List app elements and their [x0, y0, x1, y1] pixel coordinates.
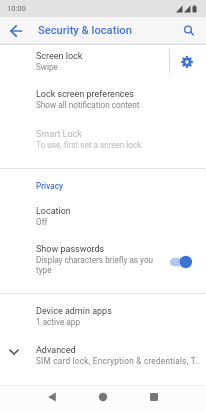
button[interactable]: Screen lock [0, 45, 206, 83]
button[interactable]: Smart Lock [0, 121, 206, 160]
staticText: 1 active app [36, 317, 80, 327]
button[interactable]: Location [0, 200, 206, 238]
staticText: Display characters briefly as you [36, 255, 154, 265]
button[interactable] [170, 255, 192, 269]
button[interactable] [144, 387, 164, 407]
staticText: Swipe [36, 62, 58, 72]
staticText: Off [36, 217, 48, 227]
button[interactable]: Lock screen preferences [0, 83, 206, 121]
button[interactable] [178, 20, 200, 42]
staticText: type [36, 265, 52, 275]
staticText: To use, first set a screen lock [36, 140, 142, 150]
button[interactable]: Show passwords [0, 238, 206, 290]
staticText: 10:00 [7, 4, 26, 13]
staticText: Show all notification content [36, 100, 140, 110]
button[interactable]: Advanced [0, 332, 206, 378]
staticText: Privacy [36, 181, 63, 191]
staticText: Advanced [36, 345, 76, 356]
button[interactable] [179, 54, 195, 70]
staticText: SIM card lock, Encryption & credentials,… [36, 356, 200, 366]
button[interactable] [93, 387, 113, 407]
button[interactable]: Device admin apps [0, 294, 206, 332]
button[interactable] [4, 20, 26, 42]
staticText: Show passwords [36, 244, 105, 255]
staticText: Security & location [38, 24, 132, 37]
staticText: Screen lock [36, 51, 83, 62]
button[interactable] [42, 387, 62, 407]
staticText: Location [36, 206, 71, 217]
staticText: Smart Lock [36, 129, 82, 140]
staticText: Device admin apps [36, 306, 112, 317]
staticText: Lock screen preferences [36, 89, 134, 100]
